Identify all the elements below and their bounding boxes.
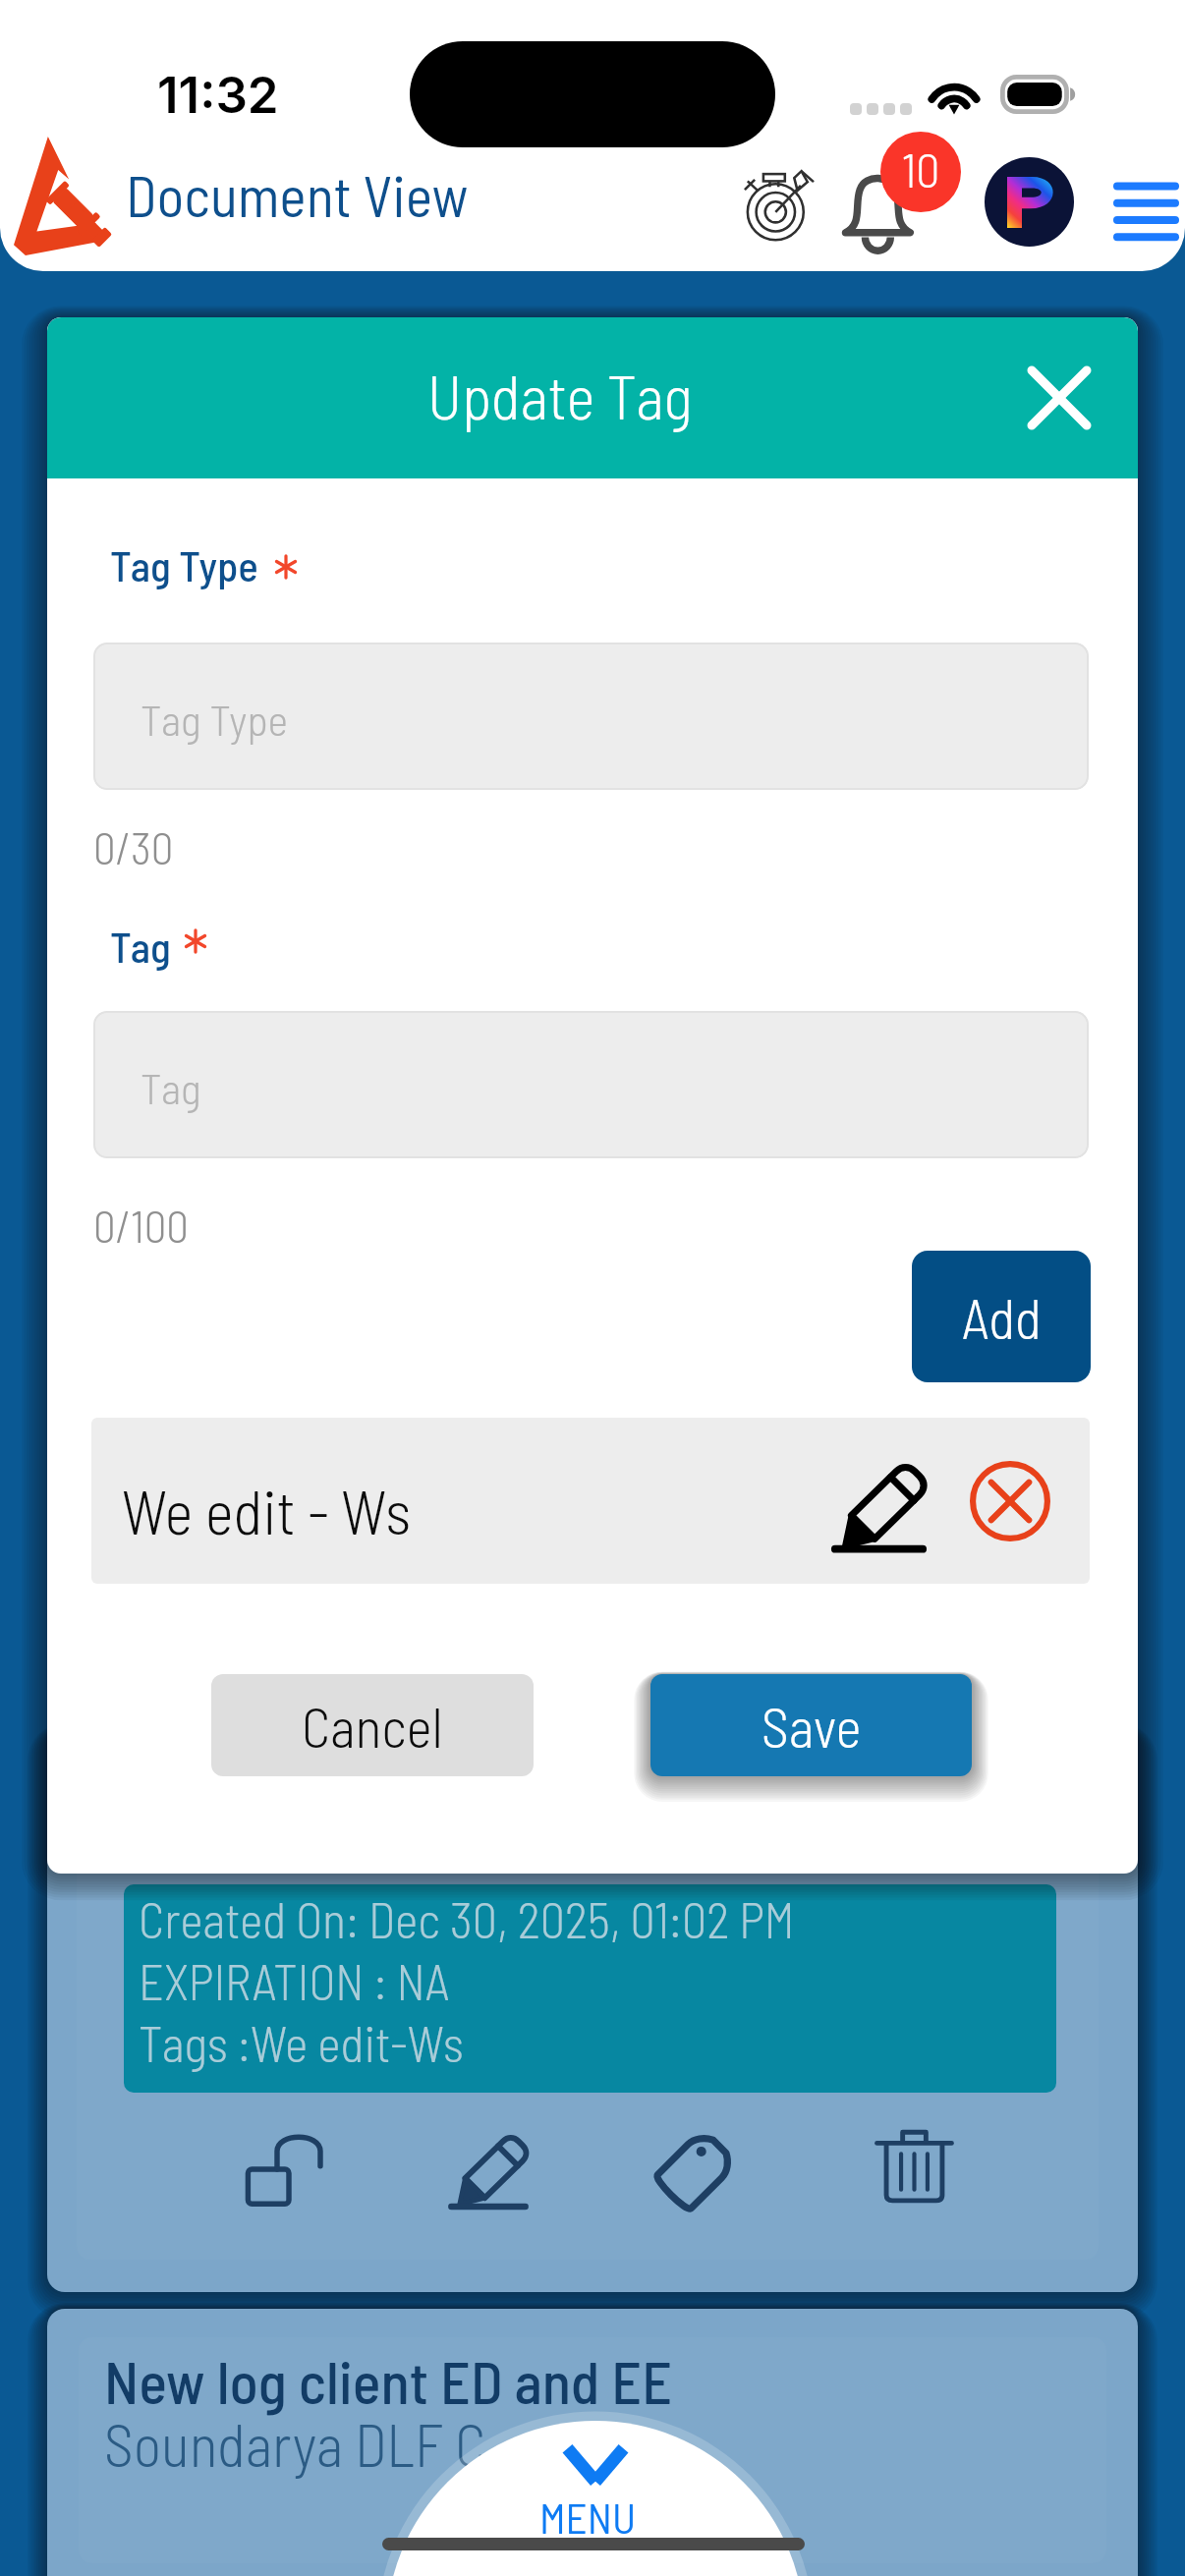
staticText: Add bbox=[962, 1284, 1042, 1350]
button[interactable]: Goals bbox=[742, 169, 814, 241]
staticText: Created On: Dec 30, 2025, 01:02 PM bbox=[139, 1889, 795, 1948]
button[interactable]: Tag Type bbox=[93, 643, 1089, 790]
staticText: Document View bbox=[126, 160, 469, 229]
button[interactable]: Edit bbox=[449, 2130, 528, 2209]
staticText: Update Tag bbox=[427, 359, 693, 431]
staticText: Tag Type bbox=[141, 693, 288, 745]
staticText: Tags :We edit-Ws bbox=[139, 2013, 464, 2072]
staticText: MENU bbox=[539, 2492, 637, 2543]
staticText: New log client ED and EE bbox=[104, 2345, 673, 2416]
staticText: We edit - Ws bbox=[122, 1474, 412, 1546]
button[interactable]: New log client ED and EE bbox=[79, 2337, 1106, 2563]
staticText: Save bbox=[762, 1693, 862, 1759]
button[interactable]: Cancel bbox=[211, 1674, 534, 1776]
staticText: Cancel bbox=[302, 1693, 443, 1759]
staticText: 0/100 bbox=[93, 1199, 189, 1252]
staticText: 11:32 bbox=[157, 65, 279, 126]
button[interactable]: Notifications bbox=[841, 169, 914, 248]
button[interactable]: 10 notifications bbox=[880, 132, 961, 212]
button[interactable]: Tag bbox=[645, 2118, 748, 2221]
button[interactable]: Save bbox=[650, 1674, 972, 1776]
staticText: Tag bbox=[110, 921, 171, 972]
button[interactable]: Tag bbox=[93, 1011, 1089, 1158]
staticText: Tag bbox=[141, 1061, 201, 1113]
button[interactable]: Unlock bbox=[246, 2130, 324, 2209]
staticText: 10 bbox=[902, 140, 940, 197]
button[interactable]: Add bbox=[912, 1251, 1091, 1382]
button[interactable]: Profile bbox=[985, 157, 1074, 247]
button[interactable]: Close bbox=[1008, 347, 1110, 449]
button[interactable]: Remove tag bbox=[956, 1447, 1064, 1555]
staticText: Soundarya DLF C bbox=[104, 2408, 486, 2479]
button[interactable]: Edit tag bbox=[819, 1442, 937, 1560]
staticText: 0/30 bbox=[93, 820, 174, 873]
button[interactable]: Menu bbox=[1117, 180, 1175, 243]
button[interactable]: MENU bbox=[386, 2421, 805, 2576]
staticText: Tag Type bbox=[110, 539, 258, 590]
button[interactable]: Delete bbox=[875, 2126, 953, 2204]
staticText: EXPIRATION : NA bbox=[139, 1951, 450, 2010]
